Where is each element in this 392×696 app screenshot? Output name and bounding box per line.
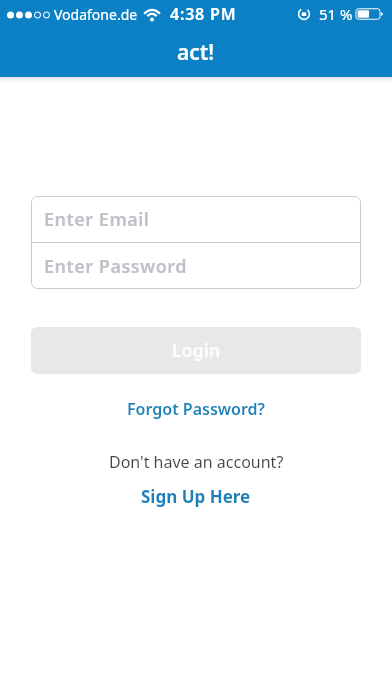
staticText: act!	[177, 38, 215, 67]
staticText: Forgot Password?	[127, 398, 265, 420]
staticText: Vodafone.de	[54, 5, 138, 24]
staticText: Enter Password	[44, 254, 187, 279]
staticText: 4:38 PM	[170, 3, 237, 25]
staticText: Don't have an account?	[109, 451, 284, 473]
button[interactable]: Enter Email	[31, 196, 361, 242]
button[interactable]: Sign Up Here	[141, 485, 251, 508]
button[interactable]: Enter Password	[31, 243, 361, 289]
staticText: 51 %	[319, 4, 353, 24]
staticText: Login	[172, 339, 221, 362]
staticText: Enter Email	[44, 207, 150, 232]
staticText: Sign Up Here	[141, 485, 251, 508]
button[interactable]: Forgot Password?	[127, 398, 265, 420]
